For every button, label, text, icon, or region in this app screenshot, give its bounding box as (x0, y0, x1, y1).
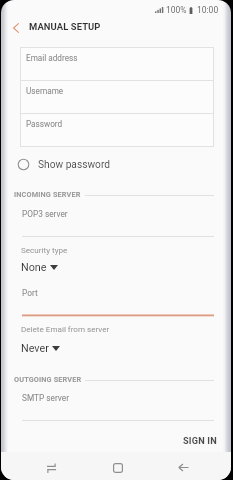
button[interactable] (18, 386, 214, 424)
staticText: Show password (38, 159, 110, 171)
staticText: Delete Email from server (21, 324, 110, 333)
staticText: POP3 server (22, 209, 68, 219)
staticText: OUTGOING SERVER (14, 375, 82, 384)
staticText: Email address (26, 53, 78, 63)
button[interactable]: Navigate up (7, 19, 25, 37)
staticText: None (21, 261, 47, 274)
button[interactable]: Password (21, 114, 213, 146)
button[interactable]: Username (21, 81, 213, 113)
button[interactable]: Email address (21, 48, 213, 80)
staticText: Port (22, 288, 38, 298)
staticText: SIGN IN (183, 435, 217, 446)
button[interactable]: Recent apps (47, 463, 58, 474)
button[interactable] (18, 241, 138, 275)
staticText: Username (26, 86, 64, 96)
button[interactable] (18, 320, 138, 354)
staticText: SMTP server (22, 393, 70, 403)
button[interactable]: Home (111, 461, 124, 474)
staticText: 10:00 (197, 5, 219, 15)
staticText: Never (21, 342, 49, 355)
button[interactable]: Back (177, 461, 190, 474)
button[interactable] (18, 281, 214, 319)
button[interactable] (18, 202, 214, 241)
staticText: INCOMING SERVER (14, 190, 81, 199)
button[interactable]: Show password (17, 155, 117, 174)
staticText: MANUAL SETUP (29, 21, 101, 32)
staticText: Password (26, 119, 63, 129)
staticText: 100% (166, 5, 187, 15)
button[interactable]: SIGN IN (177, 430, 223, 450)
staticText: Security type (21, 245, 68, 254)
